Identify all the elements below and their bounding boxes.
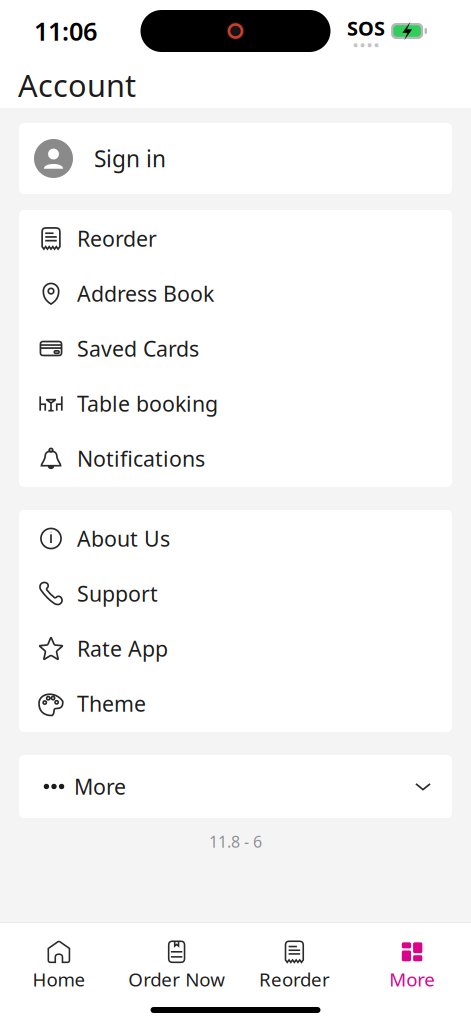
staticText: More: [74, 772, 126, 801]
staticText: Account: [18, 65, 136, 105]
staticText: Support: [77, 579, 158, 608]
button[interactable]: Theme: [19, 676, 452, 731]
button[interactable]: Order Now: [118, 923, 236, 1000]
button[interactable]: Notifications: [19, 431, 452, 486]
staticText: Address Book: [77, 279, 214, 308]
button[interactable]: Table booking: [19, 376, 452, 431]
button[interactable]: Saved Cards: [19, 321, 452, 376]
staticText: Saved Cards: [77, 334, 199, 363]
button[interactable]: More: [353, 923, 471, 1000]
button[interactable]: Support: [19, 566, 452, 621]
staticText: Table booking: [77, 389, 218, 418]
staticText: Rate App: [77, 634, 168, 663]
staticText: 11:06: [34, 14, 97, 48]
staticText: Order Now: [128, 967, 225, 992]
button[interactable]: More: [19, 755, 452, 818]
staticText: SOS: [347, 15, 385, 41]
button[interactable]: Reorder: [235, 923, 353, 1000]
button[interactable]: Reorder: [19, 211, 452, 266]
staticText: Reorder: [77, 224, 157, 253]
button[interactable]: About Us: [19, 511, 452, 566]
staticText: 11.8 - 6: [209, 831, 262, 852]
staticText: Sign in: [94, 143, 166, 173]
button[interactable]: Address Book: [19, 266, 452, 321]
staticText: Notifications: [77, 444, 205, 473]
staticText: Reorder: [259, 967, 330, 992]
button[interactable]: Home: [0, 923, 118, 1000]
button[interactable]: Sign in: [19, 123, 452, 194]
staticText: Theme: [77, 689, 146, 718]
staticText: More: [389, 967, 435, 992]
staticText: About Us: [77, 524, 170, 553]
button[interactable]: Rate App: [19, 621, 452, 676]
staticText: Home: [32, 967, 85, 992]
